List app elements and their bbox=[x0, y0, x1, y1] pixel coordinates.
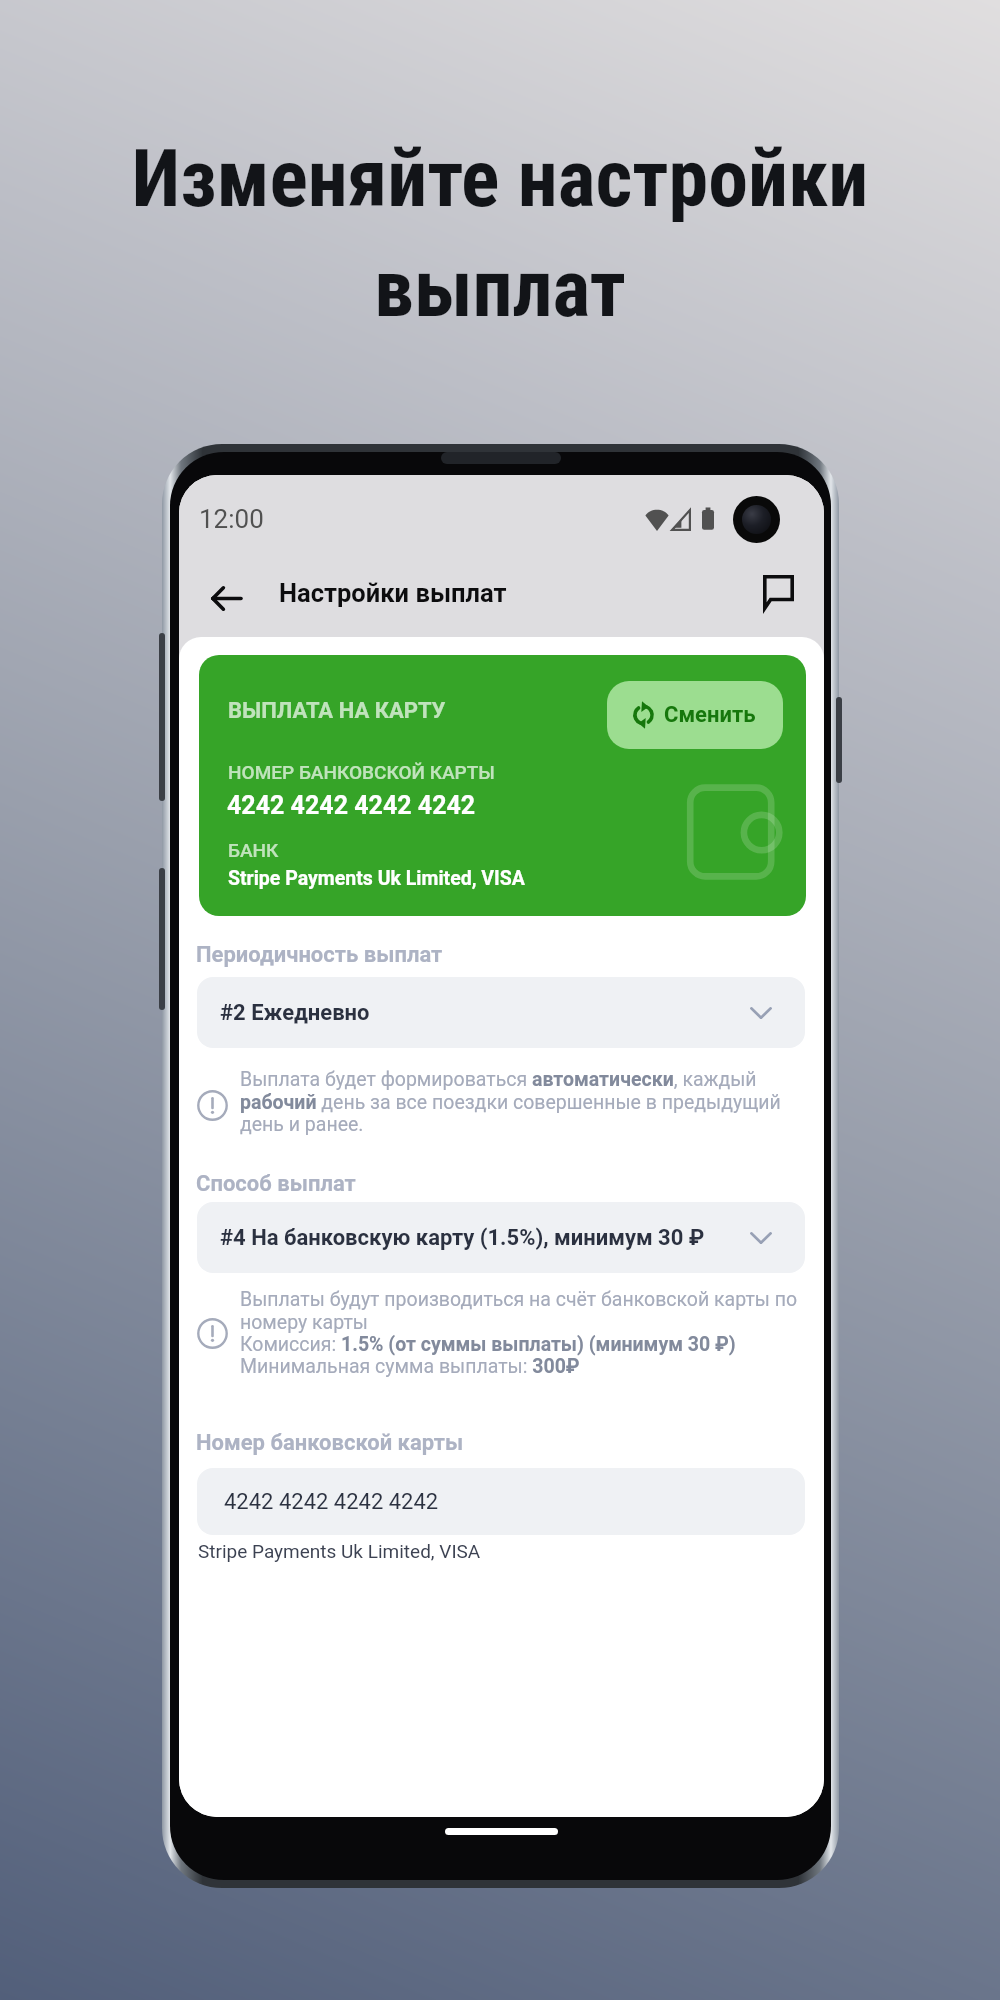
button[interactable]: #2 Ежедневно bbox=[197, 977, 805, 1048]
button[interactable]: Chat bbox=[747, 561, 809, 623]
staticText: Изменяйте настройки выплат bbox=[0, 132, 1000, 336]
staticText: Номер банковской карты bbox=[196, 1430, 464, 1456]
staticText: Stripe Payments Uk Limited, VISA bbox=[198, 1540, 481, 1562]
button[interactable]: Back bbox=[195, 567, 257, 629]
staticText: Выплата будет формироваться автоматическ… bbox=[240, 1068, 785, 1135]
staticText: Сменить bbox=[664, 702, 756, 728]
staticText: 4242 4242 4242 4242 bbox=[227, 791, 476, 820]
button[interactable]: 4242 4242 4242 4242 bbox=[197, 1468, 805, 1535]
staticText: Способ выплат bbox=[196, 1171, 356, 1197]
staticText: НОМЕР БАНКОВСКОЙ КАРТЫ bbox=[228, 761, 495, 783]
staticText: Настройки выплат bbox=[279, 578, 507, 608]
staticText: #4 На банковскую карту (1.5%), минимум 3… bbox=[220, 1225, 705, 1251]
staticText: БАНК bbox=[228, 839, 279, 861]
button[interactable]: Сменить bbox=[607, 681, 783, 749]
button[interactable]: #4 На банковскую карту (1.5%), минимум 3… bbox=[197, 1202, 805, 1273]
staticText: Выплаты будут производиться на счёт банк… bbox=[240, 1288, 805, 1377]
staticText: Периодичность выплат bbox=[196, 942, 443, 968]
staticText: 4242 4242 4242 4242 bbox=[224, 1489, 439, 1515]
staticText: ВЫПЛАТА НА КАРТУ bbox=[228, 698, 446, 724]
staticText: 12:00 bbox=[199, 504, 264, 534]
staticText: Stripe Payments Uk Limited, VISA bbox=[228, 867, 525, 890]
staticText: #2 Ежедневно bbox=[220, 1000, 370, 1026]
